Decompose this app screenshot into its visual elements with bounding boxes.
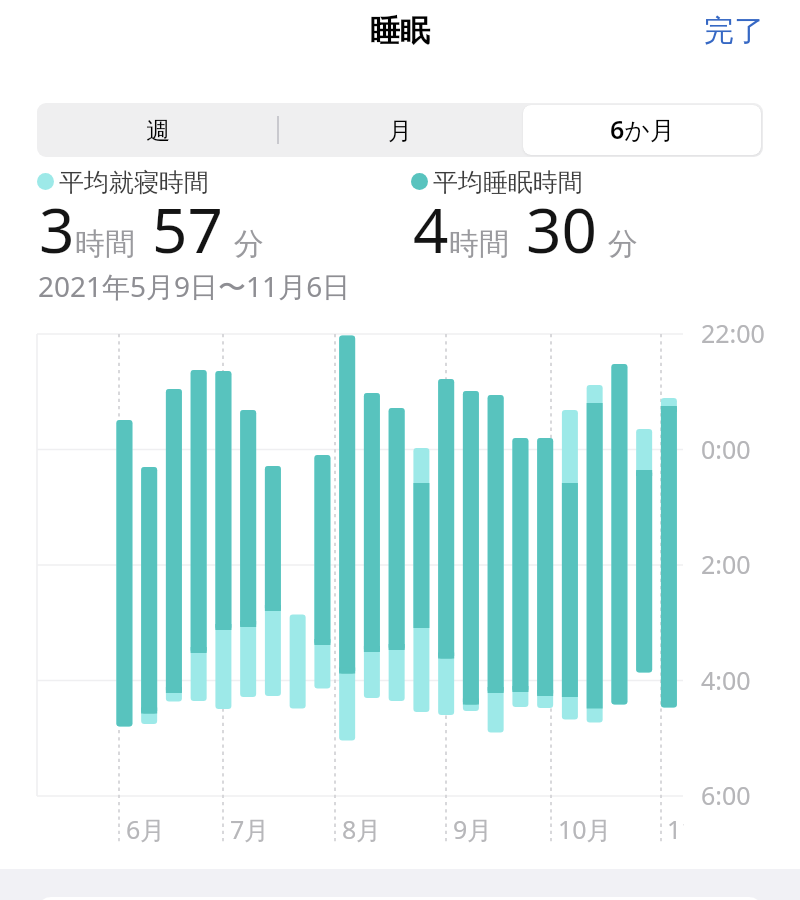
staticText: 7月	[230, 812, 270, 846]
staticText: 22:00	[701, 316, 765, 350]
button[interactable]: 完了	[680, 2, 800, 60]
staticText: 4	[413, 187, 449, 271]
button[interactable]: 月	[281, 105, 519, 155]
staticText: 4:00	[701, 663, 751, 697]
staticText: 6月	[126, 812, 166, 846]
staticText: 2021年5月9日〜11月6日	[38, 267, 351, 305]
staticText: 2:00	[701, 547, 751, 581]
staticText: 9月	[453, 812, 493, 846]
button[interactable]: 週	[39, 105, 277, 155]
staticText: 時間	[75, 225, 135, 263]
staticText: 分	[608, 225, 638, 263]
button[interactable]: 6か月	[523, 105, 761, 155]
staticText: 月	[388, 116, 412, 146]
staticText: 週	[146, 116, 170, 146]
staticText: 3	[39, 187, 75, 271]
staticText: 0:00	[701, 432, 751, 466]
staticText: 完了	[704, 12, 764, 50]
staticText: 10月	[558, 812, 612, 846]
staticText: 57	[152, 187, 223, 271]
staticText: 6か月	[610, 112, 675, 146]
staticText: 6:00	[701, 778, 751, 812]
staticText: 時間	[449, 225, 509, 263]
staticText: 30	[526, 187, 597, 271]
staticText: 平均睡眠時間	[433, 167, 583, 198]
staticText: 睡眠	[370, 12, 430, 50]
staticText: 11月	[667, 812, 684, 844]
staticText: 8月	[342, 812, 382, 846]
staticText: 平均就寝時間	[59, 167, 209, 198]
staticText: 分	[234, 225, 264, 263]
